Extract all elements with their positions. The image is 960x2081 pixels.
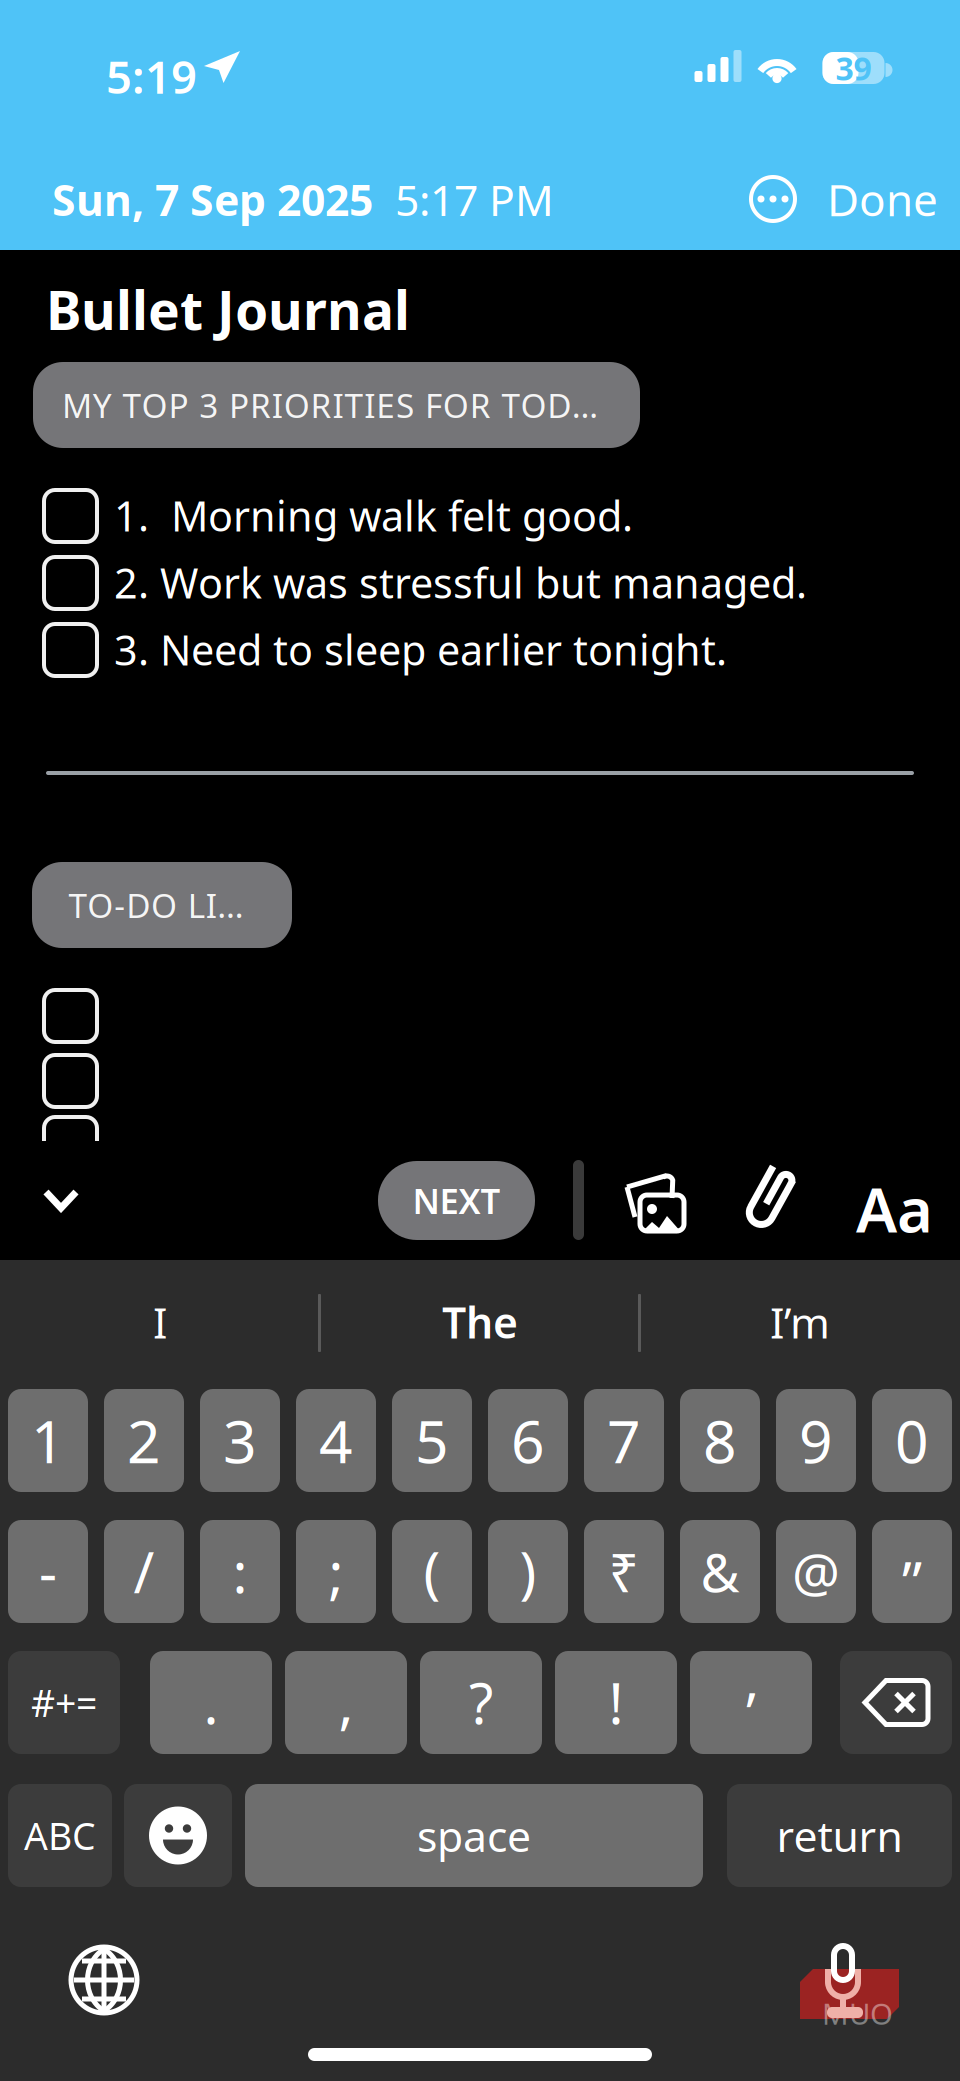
- button[interactable]: 3: [200, 1389, 280, 1492]
- button[interactable]: 9: [776, 1389, 856, 1492]
- button[interactable]: Delete: [840, 1651, 952, 1754]
- button[interactable]: ): [488, 1520, 568, 1623]
- button[interactable]: The: [320, 1278, 640, 1366]
- button[interactable]: 0: [872, 1389, 952, 1492]
- button[interactable]: 2: [104, 1389, 184, 1492]
- staticText: Aa: [856, 1168, 933, 1249]
- staticText: Sun, 7 Sep 2025: [52, 171, 373, 228]
- staticText: ,: [338, 1665, 353, 1740]
- staticText: 3: [223, 1401, 257, 1479]
- staticText: 8: [703, 1401, 737, 1479]
- button[interactable]: ₹: [584, 1520, 664, 1623]
- button[interactable]: Hide keyboard: [20, 1165, 102, 1237]
- staticText: 1. Morning walk felt good.: [114, 488, 633, 543]
- button[interactable]: 1: [8, 1389, 88, 1492]
- button[interactable]: ABC: [8, 1784, 112, 1887]
- button[interactable]: :: [200, 1520, 280, 1623]
- staticText: 3. Need to sleep earlier tonight.: [114, 622, 727, 677]
- staticText: :: [232, 1534, 247, 1609]
- button[interactable]: Emoji: [124, 1784, 232, 1887]
- staticText: 9: [799, 1401, 833, 1479]
- staticText: 7: [607, 1401, 641, 1479]
- button[interactable]: (: [392, 1520, 472, 1623]
- button[interactable]: space: [245, 1784, 703, 1887]
- staticText: .: [203, 1665, 218, 1740]
- button[interactable]: -: [8, 1520, 88, 1623]
- staticText: ₹: [608, 1536, 639, 1607]
- staticText: ’: [746, 1675, 756, 1750]
- staticText: 2. Work was stressful but managed.: [114, 555, 807, 610]
- staticText: 39: [835, 47, 871, 89]
- button[interactable]: Done: [827, 170, 938, 228]
- staticText: &: [700, 1536, 739, 1607]
- staticText: Bullet Journal: [46, 274, 410, 345]
- button[interactable]: ”: [872, 1520, 952, 1623]
- staticText: #+=: [31, 1678, 97, 1727]
- staticText: -: [39, 1534, 57, 1609]
- staticText: I’m: [770, 1294, 830, 1350]
- button[interactable]: &: [680, 1520, 760, 1623]
- staticText: ”: [902, 1544, 922, 1619]
- staticText: The: [442, 1294, 518, 1350]
- staticText: ABC: [24, 1811, 96, 1860]
- button[interactable]: I: [0, 1278, 320, 1366]
- staticText: !: [608, 1665, 623, 1740]
- staticText: 6: [511, 1401, 545, 1479]
- staticText: 1: [31, 1401, 65, 1479]
- button[interactable]: 5: [392, 1389, 472, 1492]
- staticText: return: [776, 1807, 902, 1864]
- staticText: Done: [827, 170, 938, 228]
- staticText: 4: [319, 1401, 353, 1479]
- staticText: NEXT: [412, 1177, 500, 1223]
- button[interactable]: ’: [690, 1651, 812, 1754]
- staticText: @: [792, 1536, 840, 1607]
- button[interactable]: .: [150, 1651, 272, 1754]
- staticText: MUO: [822, 1994, 893, 2033]
- staticText: I: [153, 1294, 167, 1350]
- button[interactable]: ;: [296, 1520, 376, 1623]
- staticText: (: [423, 1534, 440, 1609]
- staticText: 2: [127, 1401, 161, 1479]
- staticText: TO-DO LIST: [68, 883, 255, 927]
- staticText: 0: [895, 1401, 929, 1479]
- staticText: 5: [415, 1401, 449, 1479]
- button[interactable]: ?: [420, 1651, 542, 1754]
- staticText: 5:19: [106, 46, 197, 106]
- staticText: ): [519, 1534, 536, 1609]
- button[interactable]: #+=: [8, 1651, 120, 1754]
- button[interactable]: More options: [749, 175, 797, 223]
- button[interactable]: /: [104, 1520, 184, 1623]
- button[interactable]: @: [776, 1520, 856, 1623]
- button[interactable]: 4: [296, 1389, 376, 1492]
- button[interactable]: Switch keyboard: [71, 1947, 137, 2013]
- button[interactable]: Text formatting: [856, 1168, 933, 1249]
- button[interactable]: 7: [584, 1389, 664, 1492]
- button[interactable]: Insert photo: [618, 1168, 684, 1232]
- staticText: ;: [328, 1534, 343, 1609]
- button[interactable]: return: [727, 1784, 952, 1887]
- button[interactable]: Attach file: [742, 1162, 800, 1228]
- staticText: ?: [469, 1665, 493, 1740]
- button[interactable]: I’m: [640, 1278, 960, 1366]
- staticText: /: [133, 1534, 154, 1609]
- staticText: MY TOP 3 PRIORITIES FOR TODAY: [62, 383, 611, 427]
- button[interactable]: ,: [285, 1651, 407, 1754]
- button[interactable]: 6: [488, 1389, 568, 1492]
- button[interactable]: Dictation: [800, 1931, 899, 2007]
- staticText: 5:17 PM: [373, 171, 554, 228]
- button[interactable]: NEXT: [378, 1161, 535, 1240]
- button[interactable]: 8: [680, 1389, 760, 1492]
- staticText: space: [417, 1807, 531, 1864]
- button[interactable]: !: [555, 1651, 677, 1754]
